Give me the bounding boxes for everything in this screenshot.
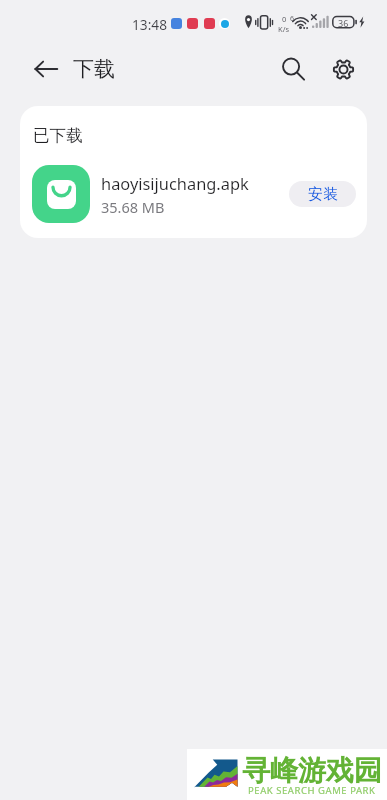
staticText: 36 [338, 17, 349, 29]
button[interactable]: 安装 [289, 181, 356, 207]
button[interactable]: Settings [324, 50, 362, 88]
button[interactable]: Back [29, 52, 63, 86]
button[interactable]: haoyisijuchang.apk [32, 165, 356, 223]
staticText: K/s [278, 24, 290, 34]
staticText: PEAK SEARCH GAME PARK [248, 784, 376, 797]
staticText: 13:48 [132, 15, 167, 34]
staticText: 0 [282, 14, 287, 24]
staticText: 35.68 MB [101, 197, 165, 217]
staticText: 下载 [73, 56, 115, 82]
staticText: haoyisijuchang.apk [101, 172, 249, 194]
button[interactable]: Search [274, 50, 312, 88]
staticText: 已下载 [33, 125, 83, 146]
staticText: 安装 [308, 185, 338, 204]
staticText: 寻峰游戏园 [242, 753, 382, 788]
staticText: 6 [290, 14, 295, 24]
